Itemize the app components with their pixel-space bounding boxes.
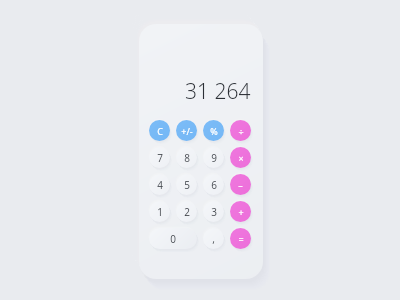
staticText: 6 [211,178,217,192]
button[interactable]: 7 [149,147,170,168]
staticText: 31 264 [185,77,251,106]
button[interactable]: 3 [203,201,224,222]
button[interactable]: , [203,228,224,249]
button[interactable]: 8 [176,147,197,168]
staticText: 7 [157,151,163,165]
staticText: 1 [157,205,163,219]
button[interactable]: ÷ [230,120,251,141]
button[interactable]: 0 [149,228,197,249]
staticText: 0 [170,232,176,246]
staticText: + [238,206,244,218]
staticText: = [238,233,244,245]
staticText: C [157,125,163,137]
staticText: +/- [181,125,193,137]
staticText: – [238,179,243,191]
button[interactable]: – [230,174,251,195]
button[interactable]: 2 [176,201,197,222]
staticText: 3 [211,205,217,219]
staticText: 9 [211,151,217,165]
staticText: 8 [184,151,190,165]
staticText: 2 [184,205,190,219]
button[interactable]: 6 [203,174,224,195]
button[interactable]: 9 [203,147,224,168]
staticText: 5 [184,178,190,192]
staticText: % [210,125,218,137]
button[interactable]: 1 [149,201,170,222]
button[interactable]: = [230,228,251,249]
staticText: , [212,232,215,246]
button[interactable]: C [149,120,170,141]
staticText: ÷ [238,125,244,137]
button[interactable]: + [230,201,251,222]
staticText: × [238,152,244,164]
staticText: 4 [157,178,163,192]
button[interactable]: 5 [176,174,197,195]
button[interactable]: 4 [149,174,170,195]
button[interactable]: × [230,147,251,168]
button[interactable]: % [203,120,224,141]
button[interactable]: +/- [176,120,197,141]
